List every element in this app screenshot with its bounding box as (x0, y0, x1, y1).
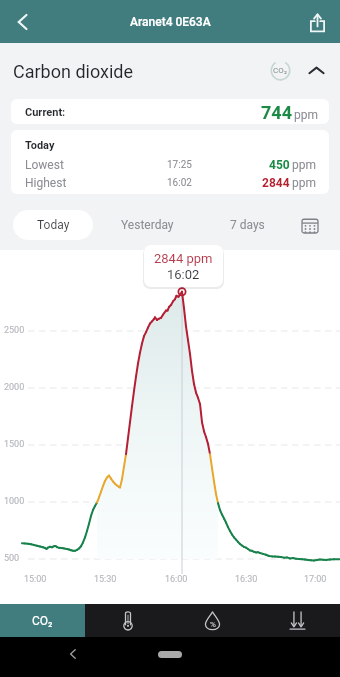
button[interactable]: Home (158, 651, 182, 658)
button[interactable]: Pressure (255, 604, 340, 637)
staticText: 500 (4, 553, 20, 564)
staticText: Today (37, 218, 70, 232)
staticText: 2000 (4, 382, 25, 393)
button[interactable]: Temperature (85, 604, 170, 637)
staticText: 16:02 (167, 177, 192, 189)
button[interactable]: Collapse (303, 57, 329, 83)
staticText: 17:00 (304, 574, 327, 585)
button[interactable]: Today (11, 130, 329, 194)
staticText: Highest (25, 176, 67, 190)
staticText: 15:00 (24, 574, 47, 585)
button[interactable]: Back (6, 6, 38, 38)
staticText: 16:02 (167, 267, 200, 282)
staticText: 2500 (4, 325, 25, 336)
staticText: Aranet4 0E63A (130, 15, 211, 29)
staticText: 7 days (230, 218, 265, 232)
staticText: 17:25 (167, 159, 192, 171)
staticText: Yesterday (121, 218, 174, 232)
button[interactable]: Humidity (170, 604, 255, 637)
staticText: ppm (292, 176, 316, 190)
staticText: Today (25, 139, 55, 152)
staticText: CO₂ (32, 614, 53, 628)
staticText: ppm (292, 158, 316, 172)
staticText: Carbon dioxide (13, 61, 133, 82)
staticText: 16:30 (235, 574, 258, 585)
button[interactable]: 7 days (201, 210, 293, 240)
button[interactable]: Share (302, 7, 332, 37)
staticText: ppm (294, 108, 318, 122)
staticText: % (210, 620, 216, 629)
staticText: 2844 (262, 176, 290, 190)
button[interactable]: Back (63, 644, 83, 664)
staticText: 15:30 (94, 574, 117, 585)
staticText: Current: (25, 106, 66, 119)
staticText: 2844 ppm (154, 251, 213, 266)
button[interactable]: CO₂ (0, 604, 85, 637)
button[interactable]: Yesterday (93, 210, 201, 240)
button[interactable]: Pick date (293, 210, 327, 240)
staticText: 16:00 (165, 574, 188, 585)
staticText: 1500 (4, 439, 25, 450)
staticText: Lowest (25, 158, 64, 172)
staticText: 450 (269, 158, 290, 172)
staticText: 1000 (4, 496, 25, 507)
staticText: CO (273, 66, 284, 75)
staticText: 744 (261, 102, 292, 123)
staticText: ₂ (284, 66, 287, 75)
button[interactable]: Today (13, 210, 93, 240)
button[interactable]: Current: (11, 99, 329, 124)
